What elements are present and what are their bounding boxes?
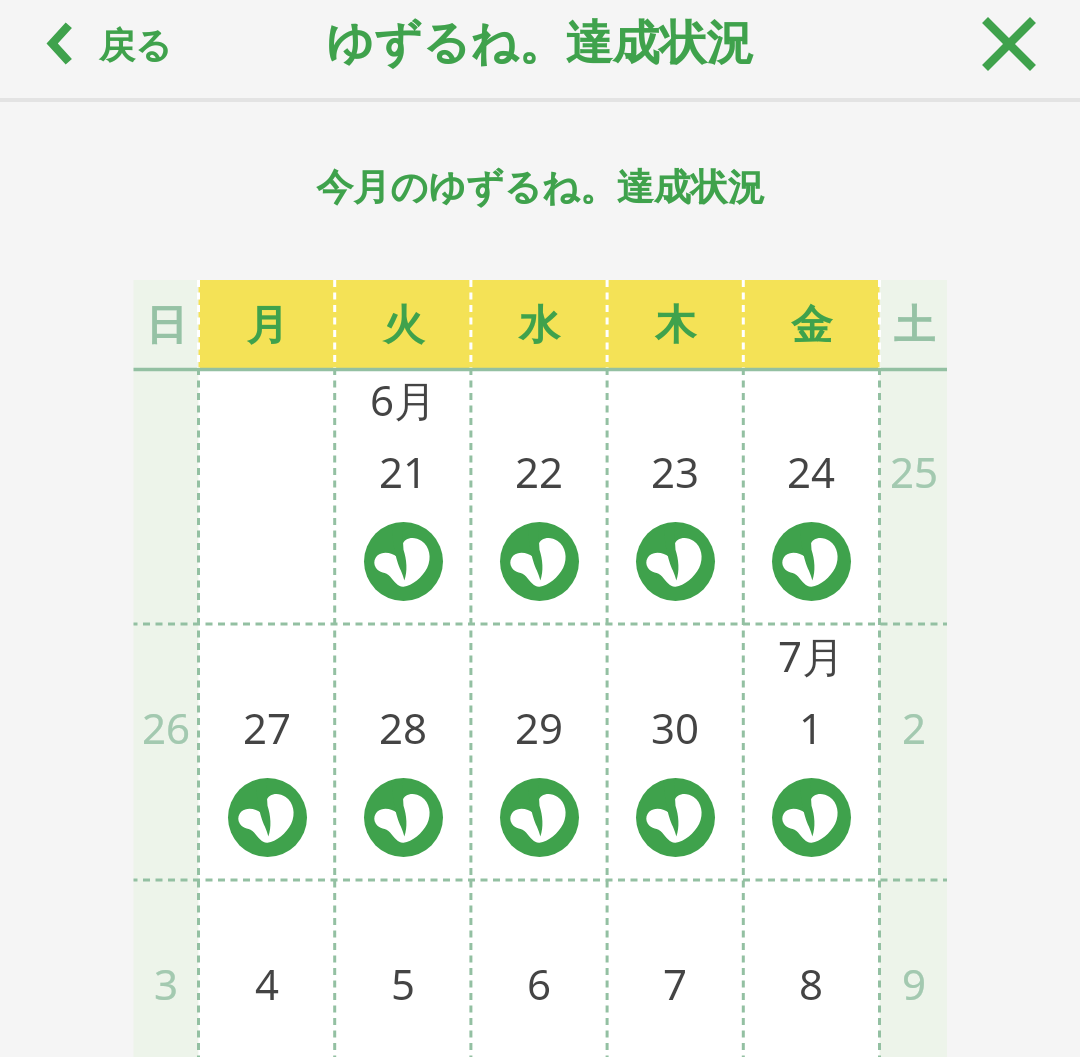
button[interactable]: 月	[199, 280, 335, 368]
button[interactable]: 7	[607, 880, 743, 1057]
button[interactable]: Close	[973, 8, 1045, 80]
staticText: 戻る	[99, 23, 172, 68]
other: Achieved	[772, 778, 851, 857]
staticText: 30	[651, 699, 700, 756]
other: Achieved	[772, 522, 851, 601]
button[interactable]: 金	[743, 280, 879, 368]
other: Achieved	[636, 778, 715, 857]
button[interactable]: 28	[335, 624, 471, 880]
staticText: 7	[663, 955, 688, 1012]
staticText: 24	[787, 443, 836, 500]
other: Achieved	[500, 522, 579, 601]
staticText: 9	[902, 955, 927, 1012]
button[interactable]: 7月	[743, 624, 879, 880]
button[interactable]: 日	[134, 280, 199, 368]
staticText: 26	[142, 699, 191, 756]
button[interactable]: 26	[134, 624, 199, 880]
staticText: 8	[799, 955, 824, 1012]
button[interactable]: 23	[607, 368, 743, 624]
staticText: 28	[379, 699, 428, 756]
staticText: 7月	[778, 627, 845, 684]
staticText: 25	[890, 443, 939, 500]
staticText: 21	[379, 443, 428, 500]
other: Achieved	[364, 778, 443, 857]
other: Achieved	[500, 778, 579, 857]
button[interactable]: 9	[880, 880, 948, 1057]
button[interactable]: 水	[471, 280, 607, 368]
button[interactable]: 27	[199, 624, 335, 880]
button[interactable]: 24	[743, 368, 879, 624]
staticText: 5	[391, 955, 416, 1012]
other: Achieved	[364, 522, 443, 601]
staticText: 火	[383, 300, 424, 352]
button[interactable]: 戻る	[40, 0, 172, 86]
button[interactable]: 6月	[335, 368, 471, 624]
staticText: 金	[791, 300, 832, 352]
button[interactable]: 3	[134, 880, 199, 1057]
staticText: 3	[154, 955, 179, 1012]
staticText: 27	[243, 699, 292, 756]
staticText: 今月のゆずるね。達成状況	[316, 164, 765, 211]
staticText: 1	[799, 699, 824, 756]
button[interactable]: 木	[607, 280, 743, 368]
button[interactable]: 30	[607, 624, 743, 880]
button[interactable]: 火	[335, 280, 471, 368]
staticText: 日	[146, 300, 187, 352]
staticText: 29	[515, 699, 564, 756]
button[interactable]: 4	[199, 880, 335, 1057]
button[interactable]: 29	[471, 624, 607, 880]
staticText: 22	[515, 443, 564, 500]
staticText: 土	[894, 300, 935, 352]
button[interactable]: 25	[880, 368, 948, 624]
staticText: ゆずるね。達成状況	[326, 14, 754, 73]
button[interactable]: 土	[880, 280, 948, 368]
staticText: 4	[255, 955, 280, 1012]
button[interactable]: 2	[880, 624, 948, 880]
button[interactable]: 22	[471, 368, 607, 624]
button[interactable]: 6	[471, 880, 607, 1057]
staticText: 2	[902, 699, 927, 756]
staticText: 木	[655, 300, 696, 352]
staticText: 月	[247, 300, 288, 352]
other: Achieved	[636, 522, 715, 601]
button[interactable]: 8	[743, 880, 879, 1057]
button[interactable]: 5	[335, 880, 471, 1057]
staticText: 6月	[370, 371, 437, 428]
staticText: 6	[527, 955, 552, 1012]
staticText: 水	[519, 300, 560, 352]
other: Achieved	[228, 778, 307, 857]
staticText: 23	[651, 443, 700, 500]
